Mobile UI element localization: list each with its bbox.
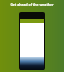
button[interactable] bbox=[20, 12, 44, 70]
staticText: Get ahead of the weather bbox=[10, 2, 54, 7]
